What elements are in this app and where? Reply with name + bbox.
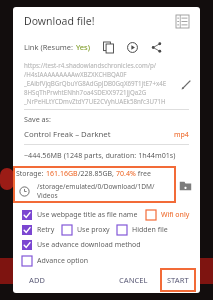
staticText: /228.85GB, — [78, 169, 116, 179]
button[interactable]: Choose folder — [176, 176, 194, 194]
button[interactable]: Edit link — [177, 75, 195, 93]
button[interactable]: Control Freak – Darknet — [24, 129, 189, 140]
staticText: 8HSqThPrwhtENhh7oa4SDEXX9721JjQa2G — [24, 88, 147, 96]
staticText: free — [136, 169, 151, 179]
button[interactable]: Use proxy — [62, 225, 110, 235]
staticText: Wifi only — [161, 210, 190, 220]
staticText: Advance option — [37, 256, 89, 266]
staticText: Hidden file — [132, 225, 168, 235]
staticText: /storage/emulated/0/Download/1DM/ — [37, 182, 155, 191]
staticText: Control Freak – Darknet — [24, 129, 111, 140]
staticText: 70.4% — [116, 169, 136, 179]
staticText: Retry — [37, 225, 55, 235]
staticText: ~444.56MB (1248 parts, duration: 1h44m01… — [24, 150, 176, 160]
staticText: Videos — [37, 191, 58, 200]
staticText: Link (Resume: — [24, 42, 76, 52]
button[interactable]: CANCEL — [111, 269, 156, 291]
button[interactable]: Download queue — [170, 9, 194, 33]
staticText: 161.16GB — [46, 169, 78, 179]
staticText: mp4 — [174, 130, 189, 140]
staticText: _EAibfVjqBGrQbuYG8AdGpJDB0GqX69T1jtE7+x4… — [24, 79, 167, 87]
staticText: Save as: — [24, 114, 51, 124]
staticText: Download file! — [24, 14, 95, 28]
staticText: Use proxy — [77, 225, 110, 235]
button[interactable]: Wifi only — [146, 210, 190, 220]
button[interactable]: Use advance download method — [22, 240, 141, 250]
button[interactable]: Storage: — [13, 166, 176, 203]
button[interactable]: Play — [122, 37, 142, 57]
staticText: ADD — [29, 275, 45, 285]
button[interactable]: Share — [146, 37, 166, 57]
button[interactable]: Retry — [22, 225, 55, 235]
staticText: CANCEL — [119, 275, 148, 285]
button[interactable]: Advance option — [22, 256, 89, 266]
staticText: https://test-r4.shadowlandschronicles.co… — [24, 61, 157, 69]
button[interactable]: Hidden file — [117, 225, 168, 235]
button[interactable]: ADD — [19, 269, 55, 291]
button[interactable]: START — [160, 268, 196, 292]
staticText: START — [167, 275, 189, 285]
staticText: /H4sIAAAAAAAAAwXBZXKCHBQA0F — [24, 70, 127, 78]
staticText: Use advance download method — [37, 240, 141, 250]
staticText: Use webpage title as file name — [37, 210, 138, 220]
staticText: Yes) — [76, 42, 90, 52]
staticText: _NrPeHLtYCDmvZtdY7UE2CVyhUAEk58nfc3U71H — [24, 97, 166, 105]
button[interactable]: Use webpage title as file name — [22, 210, 138, 220]
staticText: Storage: — [16, 169, 46, 179]
button[interactable]: Copy link — [98, 37, 118, 57]
